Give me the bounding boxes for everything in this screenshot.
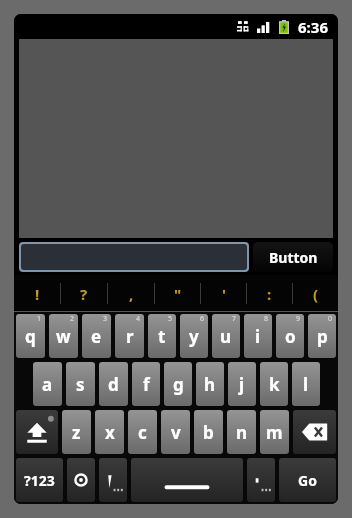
staticText: ' [222,284,226,304]
button[interactable]: r [115,314,144,358]
button[interactable]: : [247,275,292,312]
staticText: u [220,325,232,348]
staticText: w [56,325,71,348]
staticText: o [285,325,296,348]
staticText: , [129,284,134,304]
button[interactable]: t [148,314,176,358]
staticText: r [126,325,134,348]
staticText: m [266,421,283,444]
button[interactable]: e [82,314,111,358]
button[interactable]: n [227,410,256,454]
button[interactable]: ' [201,275,246,312]
staticText: y [189,325,199,348]
staticText: ?123 [24,471,55,490]
button[interactable]: Delete [293,410,336,454]
button[interactable]: Input method [67,458,95,502]
staticText: 5 [168,314,173,324]
staticText: 1 [37,314,42,324]
button[interactable]: i [244,314,272,358]
button[interactable]: j [228,362,256,406]
button[interactable]: Period [247,458,275,502]
staticText: 4 [136,314,141,324]
staticText: j [239,373,245,396]
button[interactable]: Button [253,242,333,272]
staticText: v [171,421,181,444]
staticText: b [203,421,214,444]
button[interactable]: m [260,410,289,454]
staticText: d [108,373,119,396]
button[interactable]: q [16,314,45,358]
staticText: ( [313,284,319,304]
button[interactable]: o [276,314,304,358]
staticText: n [236,421,248,444]
staticText: 3 [103,314,108,324]
staticText: k [269,373,280,396]
other: 3G data [237,20,249,34]
staticText: " [174,284,182,304]
staticText: 9 [296,314,301,324]
button[interactable]: d [99,362,128,406]
button[interactable]: b [194,410,223,454]
staticText: c [138,421,147,444]
staticText: z [72,421,81,444]
staticText: a [42,373,53,396]
button[interactable]: Symbols [16,458,63,502]
button[interactable]: w [49,314,78,358]
staticText: ? [80,284,88,304]
button[interactable]: p [308,314,336,358]
staticText: p [317,325,328,348]
button[interactable]: s [66,362,95,406]
staticText: 2 [70,314,75,324]
button[interactable]: ( [293,275,338,312]
button[interactable]: Space [131,458,243,502]
button[interactable]: Shift [16,410,58,454]
staticText: i [255,325,261,348]
button[interactable]: v [161,410,190,454]
staticText: 7 [232,314,237,324]
button[interactable] [21,244,247,270]
other: Battery charging [279,20,289,34]
staticText: Button [269,248,318,267]
staticText: 6:36 [298,17,328,37]
button[interactable]: a [33,362,62,406]
staticText: l [303,373,309,396]
button[interactable]: f [132,362,160,406]
button[interactable]: g [164,362,192,406]
staticText: g [173,373,184,396]
button[interactable]: z [62,410,91,454]
button[interactable]: k [260,362,288,406]
staticText: t [158,325,166,348]
staticText: s [76,373,85,396]
staticText: x [105,421,115,444]
staticText: h [204,373,216,396]
button[interactable]: ! [14,275,60,312]
button[interactable]: u [212,314,240,358]
button[interactable]: Comma [99,458,127,502]
staticText: ! [35,284,40,304]
button[interactable]: c [128,410,157,454]
staticText: 6 [200,314,205,324]
staticText: Go [298,471,317,490]
button[interactable]: h [196,362,224,406]
button[interactable]: Go [279,458,336,502]
button[interactable]: , [108,275,154,312]
button[interactable]: l [292,362,320,406]
staticText: 0 [328,314,333,324]
button[interactable]: " [155,275,200,312]
button[interactable]: x [95,410,124,454]
button[interactable]: ? [61,275,107,312]
button[interactable]: y [180,314,208,358]
staticText: f [143,373,150,396]
staticText: q [25,325,36,348]
staticText: e [91,325,102,348]
other: Signal strength [257,21,271,33]
staticText: 8 [264,314,269,324]
staticText: : [267,284,272,304]
